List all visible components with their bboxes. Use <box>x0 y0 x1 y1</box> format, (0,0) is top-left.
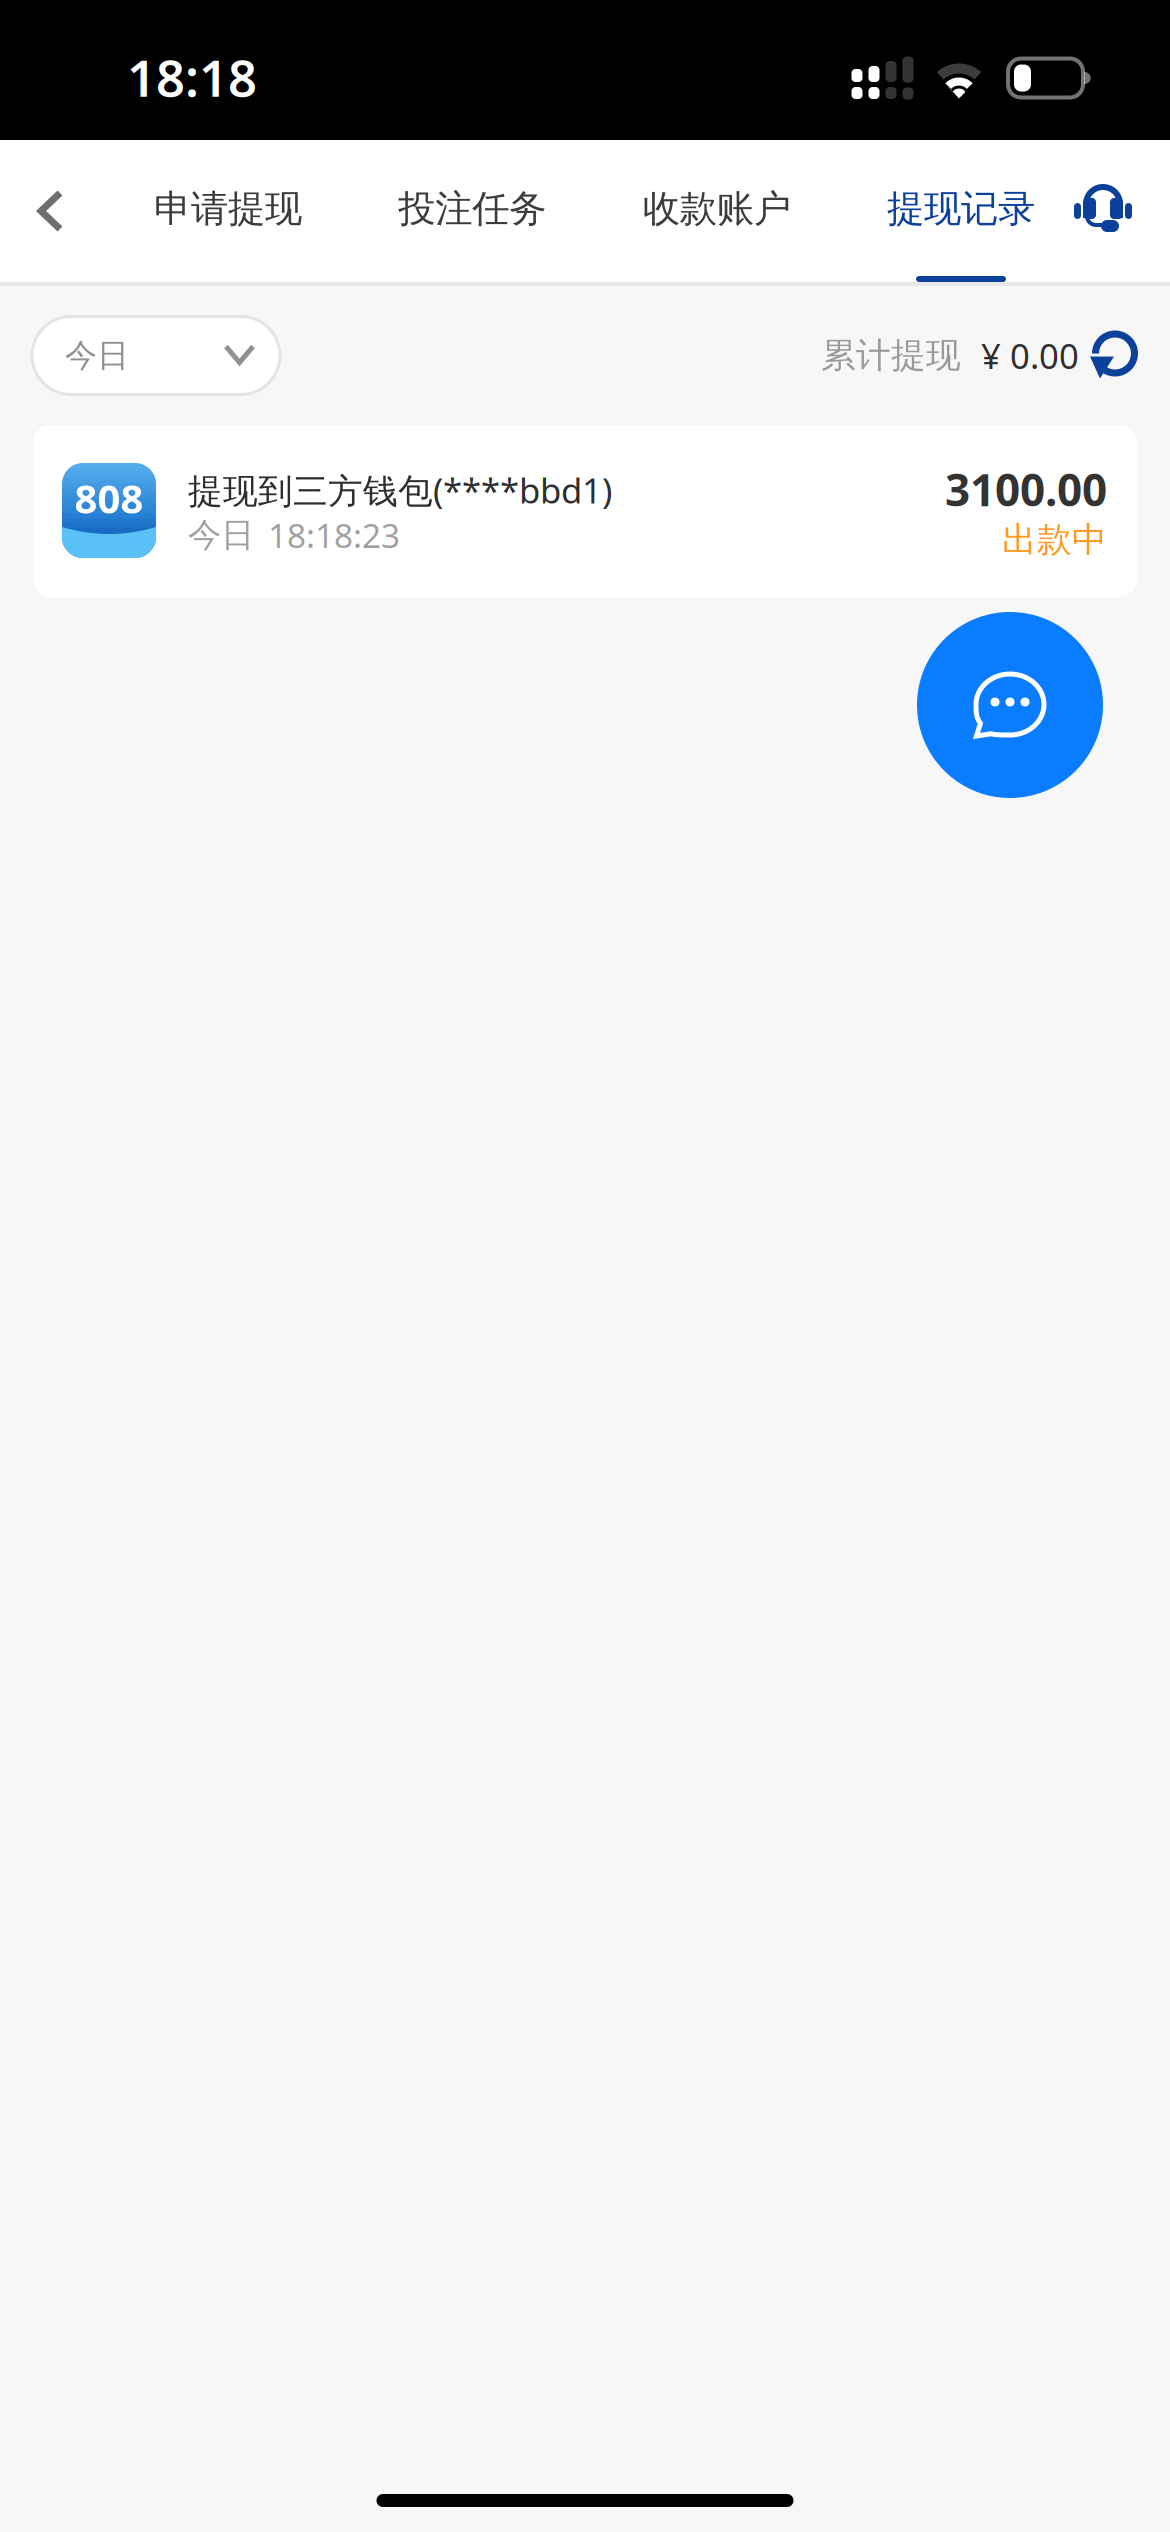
button[interactable]: 投注任务 <box>398 140 546 282</box>
staticText: 今日 <box>65 336 129 375</box>
staticText: 808 <box>74 471 143 524</box>
staticText: 提现到三方钱包(****bbd1) <box>188 467 612 513</box>
staticText: 累计提现 <box>821 334 961 377</box>
staticText: 出款中 <box>1002 518 1107 561</box>
button[interactable]: 808 <box>33 425 1137 597</box>
staticText: 18:18:23 <box>268 513 400 557</box>
button[interactable]: Chat support <box>917 612 1103 798</box>
button[interactable]: Back <box>0 140 154 282</box>
staticText: 申请提现 <box>154 186 302 232</box>
button[interactable]: Customer service <box>1035 140 1170 282</box>
staticText: 3100.00 <box>945 460 1107 518</box>
staticText: 投注任务 <box>398 186 546 232</box>
staticText: 收款账户 <box>643 186 791 232</box>
staticText: ¥ 0.00 <box>981 332 1079 378</box>
staticText: 提现记录 <box>887 186 1035 232</box>
button[interactable]: Refresh <box>1079 329 1139 381</box>
button[interactable]: 今日 <box>32 316 280 394</box>
staticText: 18:18 <box>127 43 257 111</box>
button[interactable]: 收款账户 <box>643 140 791 282</box>
button[interactable]: 提现记录 <box>887 140 1035 282</box>
staticText: 今日 <box>188 515 254 556</box>
button[interactable]: 申请提现 <box>154 140 302 282</box>
